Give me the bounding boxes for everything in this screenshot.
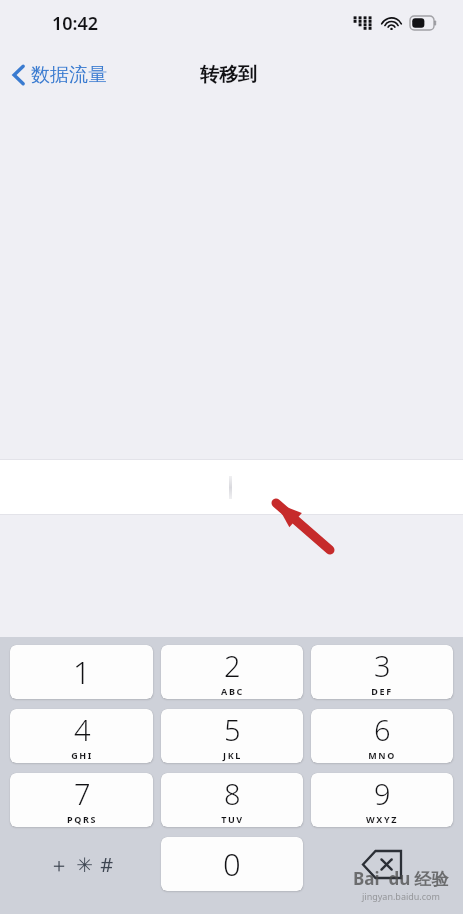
button[interactable]: 1 xyxy=(10,645,153,699)
staticText: 转移到 xyxy=(200,63,257,87)
staticText: GHI xyxy=(71,749,93,761)
button[interactable]: 5 xyxy=(161,709,303,763)
staticText: 2 xyxy=(224,646,241,685)
staticText: TUV xyxy=(221,813,244,825)
staticText: ＋ ✳ # xyxy=(49,851,115,878)
staticText: 9 xyxy=(374,774,391,813)
button[interactable]: 8 xyxy=(161,773,303,827)
staticText: 6 xyxy=(374,710,391,749)
button[interactable]: 数据流量 xyxy=(0,57,117,93)
staticText: 数据流量 xyxy=(31,63,107,87)
button[interactable] xyxy=(0,460,463,514)
staticText: WXYZ xyxy=(366,813,398,825)
staticText: 8 xyxy=(224,774,241,813)
button[interactable]: 6 xyxy=(311,709,453,763)
staticText: 5 xyxy=(224,710,241,749)
button[interactable]: 7 xyxy=(10,773,153,827)
staticText: DEF xyxy=(371,685,393,697)
staticText: PQRS xyxy=(67,813,97,825)
button[interactable]: ＋ ✳ # xyxy=(10,837,153,891)
staticText: jingyan.baidu.com xyxy=(362,890,440,902)
staticText: 10:42 xyxy=(52,11,99,36)
staticText: ABC xyxy=(221,685,244,697)
staticText: 3 xyxy=(374,646,391,685)
staticText: JKL xyxy=(223,749,242,761)
button[interactable]: 2 xyxy=(161,645,303,699)
staticText: Bai du 经验 xyxy=(353,867,449,890)
button[interactable]: 9 xyxy=(311,773,453,827)
button[interactable]: 4 xyxy=(10,709,153,763)
staticText: MNO xyxy=(368,749,396,761)
staticText: 0 xyxy=(223,843,241,885)
button[interactable]: 3 xyxy=(311,645,453,699)
button[interactable]: Delete xyxy=(311,837,453,891)
staticText: 4 xyxy=(74,710,91,749)
staticText: 1 xyxy=(73,651,91,693)
button[interactable]: 0 xyxy=(161,837,303,891)
staticText: 7 xyxy=(74,774,91,813)
